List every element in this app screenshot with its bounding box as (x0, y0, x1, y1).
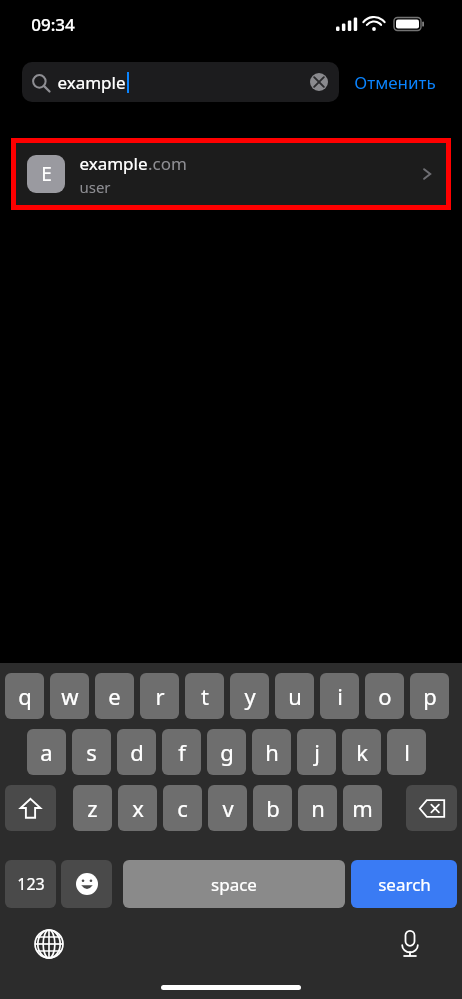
button[interactable]: space (123, 860, 345, 908)
button[interactable]: example (22, 62, 339, 102)
button[interactable]: E (16, 143, 446, 205)
staticText: v (222, 793, 234, 823)
button[interactable]: p (410, 673, 449, 719)
staticText: s (86, 737, 97, 767)
button[interactable]: v (208, 785, 247, 831)
button[interactable]: Backspace (406, 785, 457, 831)
button[interactable]: e (95, 673, 134, 719)
button[interactable]: Dictation (388, 922, 432, 966)
button[interactable]: Отменить (349, 62, 441, 102)
button[interactable]: z (73, 785, 112, 831)
button[interactable]: d (117, 729, 156, 775)
staticText: r (155, 681, 165, 711)
staticText: j (314, 737, 320, 767)
button[interactable]: b (253, 785, 292, 831)
staticText: example (57, 71, 126, 94)
button[interactable]: h (252, 729, 291, 775)
button[interactable]: c (163, 785, 202, 831)
button[interactable]: g (207, 729, 246, 775)
staticText: g (220, 737, 234, 767)
staticText: l (404, 737, 410, 767)
button[interactable]: r (140, 673, 179, 719)
staticText: .com (148, 152, 187, 175)
staticText: u (288, 681, 302, 711)
button[interactable]: u (275, 673, 314, 719)
button[interactable]: s (72, 729, 111, 775)
button[interactable]: o (365, 673, 404, 719)
staticText: f (178, 737, 186, 767)
staticText: q (18, 681, 32, 711)
button[interactable]: a (27, 729, 66, 775)
button[interactable]: Clear (308, 71, 330, 93)
staticText: 123 (17, 873, 45, 895)
button[interactable]: f (162, 729, 201, 775)
staticText: k (356, 737, 368, 767)
staticText: h (265, 737, 279, 767)
button[interactable]: k (342, 729, 381, 775)
staticText: b (266, 793, 280, 823)
button[interactable]: i (320, 673, 359, 719)
staticText: x (132, 793, 144, 823)
staticText: p (423, 681, 437, 711)
button[interactable]: y (230, 673, 269, 719)
staticText: m (352, 793, 373, 823)
staticText: t (201, 681, 209, 711)
button[interactable]: search (351, 860, 457, 908)
staticText: user (79, 177, 111, 197)
button[interactable]: Emoji (61, 860, 112, 908)
staticText: Отменить (354, 71, 436, 94)
staticText: d (130, 737, 144, 767)
button[interactable]: m (343, 785, 382, 831)
button[interactable]: 123 (5, 860, 56, 908)
button[interactable]: x (118, 785, 157, 831)
staticText: e (108, 681, 121, 711)
staticText: z (87, 793, 98, 823)
staticText: w (61, 681, 79, 711)
button[interactable]: j (297, 729, 336, 775)
staticText: E (41, 161, 52, 187)
staticText: o (378, 681, 392, 711)
staticText: i (337, 681, 343, 711)
button[interactable]: Shift (5, 785, 56, 831)
staticText: n (311, 793, 325, 823)
staticText: c (177, 793, 188, 823)
button[interactable]: q (5, 673, 44, 719)
button[interactable]: Change keyboard (27, 922, 71, 966)
button[interactable]: n (298, 785, 337, 831)
staticText: 09:34 (31, 13, 75, 36)
staticText: y (244, 681, 256, 711)
button[interactable]: l (387, 729, 426, 775)
staticText: example (79, 152, 148, 175)
staticText: search (378, 873, 431, 896)
button[interactable]: t (185, 673, 224, 719)
button[interactable]: w (50, 673, 89, 719)
staticText: a (40, 737, 53, 767)
staticText: space (211, 873, 257, 896)
